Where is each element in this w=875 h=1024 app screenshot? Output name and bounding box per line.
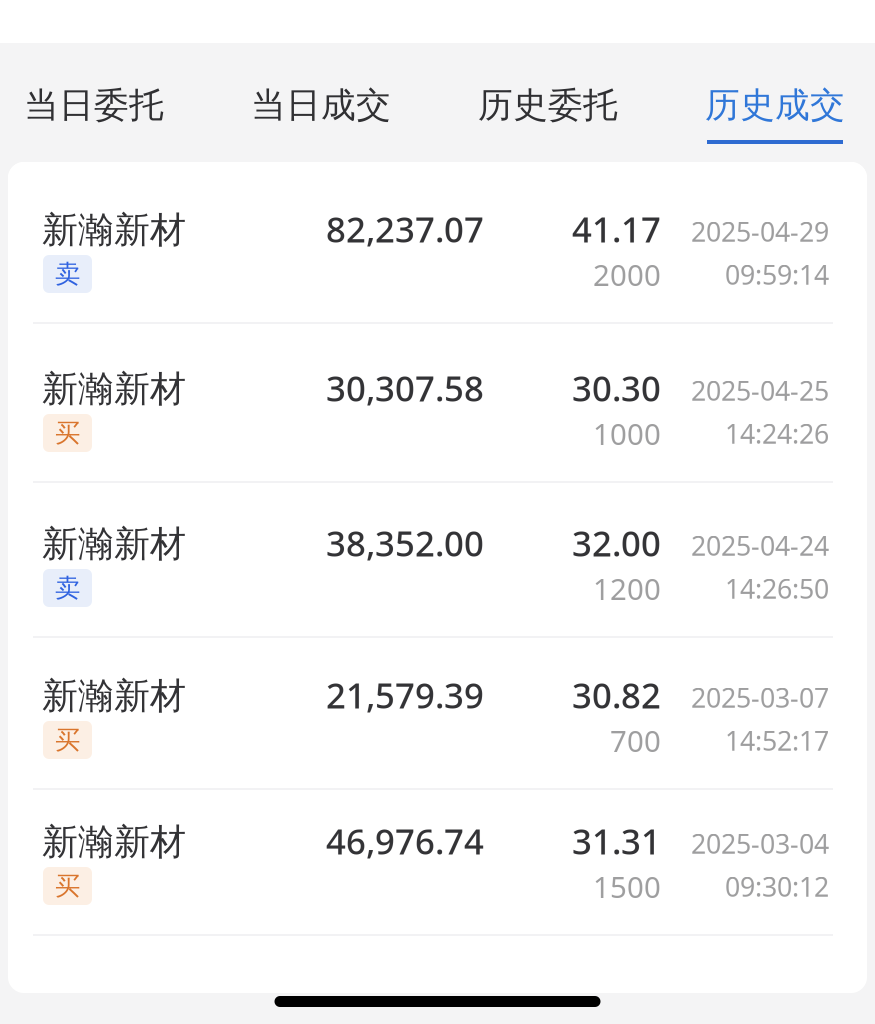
staticText: 21,579.39: [326, 672, 484, 718]
staticText: 2025-03-04: [691, 826, 829, 861]
staticText: 买: [55, 870, 80, 901]
staticText: 31.31: [572, 818, 661, 864]
staticText: 30.82: [572, 672, 661, 718]
staticText: 82,237.07: [326, 206, 484, 252]
button[interactable]: 历史委托: [480, 43, 616, 162]
button[interactable]: 新瀚新材: [8, 790, 867, 936]
button[interactable]: 历史成交: [707, 43, 843, 162]
staticText: 14:52:17: [725, 723, 829, 758]
staticText: 买: [55, 417, 80, 448]
staticText: 历史委托: [478, 84, 618, 127]
staticText: 新瀚新材: [42, 522, 186, 566]
staticText: 卖: [55, 572, 80, 603]
staticText: 32.00: [572, 520, 661, 566]
button[interactable]: 当日成交: [253, 43, 389, 162]
staticText: 买: [55, 724, 80, 755]
button[interactable]: 新瀚新材: [8, 162, 867, 324]
staticText: 14:26:50: [725, 571, 829, 606]
staticText: 2025-03-07: [691, 680, 829, 715]
staticText: 2000: [593, 255, 661, 294]
staticText: 46,976.74: [326, 818, 484, 864]
staticText: 当日委托: [24, 84, 164, 127]
staticText: 2025-04-29: [691, 214, 829, 249]
staticText: 38,352.00: [326, 520, 484, 566]
staticText: 30.30: [572, 365, 661, 411]
staticText: 卖: [55, 258, 80, 289]
staticText: 09:30:12: [725, 869, 829, 904]
staticText: 09:59:14: [725, 257, 829, 292]
staticText: 1200: [593, 569, 661, 608]
button[interactable]: 新瀚新材: [8, 324, 867, 483]
button[interactable]: 新瀚新材: [8, 483, 867, 638]
staticText: 新瀚新材: [42, 674, 186, 718]
staticText: 2025-04-24: [691, 528, 829, 563]
staticText: 2025-04-25: [691, 373, 829, 408]
staticText: 新瀚新材: [42, 208, 186, 252]
staticText: 14:24:26: [725, 416, 829, 451]
button[interactable]: 当日委托: [26, 43, 162, 162]
staticText: 1500: [593, 867, 661, 906]
staticText: 新瀚新材: [42, 367, 186, 411]
staticText: 700: [610, 721, 661, 760]
staticText: 当日成交: [251, 84, 391, 127]
staticText: 1000: [593, 414, 661, 453]
staticText: 41.17: [572, 206, 661, 252]
button[interactable]: 新瀚新材: [8, 638, 867, 790]
staticText: 历史成交: [705, 84, 845, 127]
staticText: 30,307.58: [326, 365, 484, 411]
staticText: 新瀚新材: [42, 820, 186, 864]
